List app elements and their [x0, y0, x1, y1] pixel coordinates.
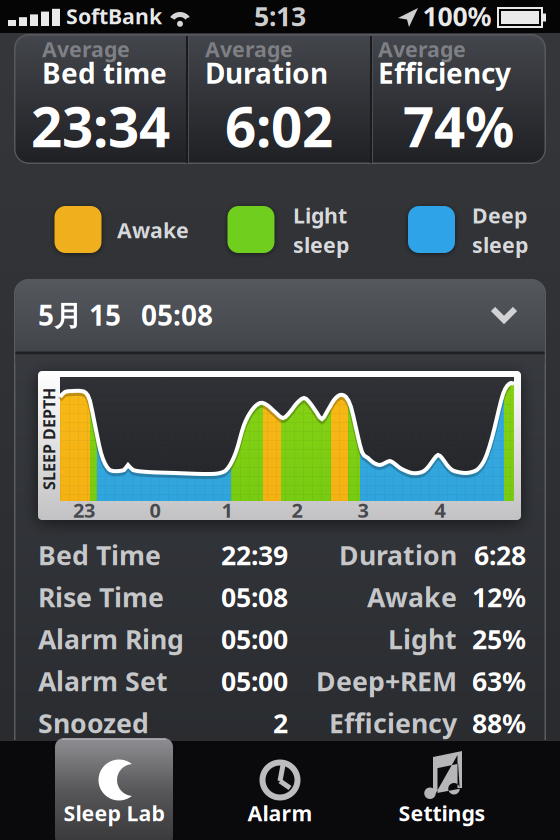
staticText: SoftBank [66, 2, 162, 30]
staticText: Efficiency [329, 705, 457, 741]
staticText: 5:13 [254, 0, 306, 34]
button[interactable]: Alarm [0, 0, 560, 840]
staticText: Sleep Lab [63, 799, 164, 827]
staticText: Light [388, 621, 457, 657]
staticText: Duration [339, 537, 457, 573]
staticText: Alarm Ring [38, 621, 184, 657]
button[interactable]: Sleep Lab [0, 0, 560, 840]
staticText: 4 [434, 497, 445, 523]
staticText: sleep [472, 230, 528, 259]
staticText: 12% [472, 579, 526, 615]
staticText: Alarm [247, 799, 312, 827]
staticText: Snoozed [38, 705, 149, 741]
staticText: 0 [149, 497, 160, 523]
staticText: Awake [117, 216, 189, 244]
button[interactable]: 5月 15 [0, 0, 560, 840]
staticText: 2 [291, 497, 302, 523]
staticText: Awake [367, 579, 457, 615]
staticText: 6:02 [225, 90, 333, 162]
staticText: 88% [472, 705, 526, 741]
staticText: Settings [398, 799, 485, 827]
staticText: sleep [293, 230, 349, 259]
staticText: Alarm Set [38, 663, 168, 699]
staticText: Light [293, 201, 347, 229]
staticText: 1 [221, 497, 232, 523]
staticText: Average [42, 35, 130, 63]
staticText: Bed Time [38, 537, 161, 573]
staticText: 05:08 [221, 579, 288, 615]
staticText: 23:34 [31, 90, 170, 162]
staticText: 2 [273, 705, 288, 741]
staticText: 74% [403, 90, 514, 162]
staticText: 05:00 [221, 663, 288, 699]
staticText: Rise Time [38, 579, 164, 615]
staticText: Average [378, 35, 466, 63]
staticText: Deep [472, 201, 527, 229]
staticText: SLEEP DEPTH [0, 428, 100, 450]
staticText: Efficiency [378, 54, 511, 92]
staticText: 05:08 [141, 296, 213, 334]
staticText: Duration [205, 54, 328, 92]
staticText: 23 [73, 497, 95, 523]
staticText: 22:39 [221, 537, 288, 573]
staticText: 25% [472, 621, 526, 657]
staticText: Average [205, 35, 293, 63]
staticText: 5月 15 [38, 296, 121, 334]
button[interactable]: Settings [0, 0, 560, 840]
staticText: Bed time [42, 54, 167, 92]
staticText: 05:00 [221, 621, 288, 657]
staticText: 100% [422, 0, 491, 34]
staticText: 3 [357, 497, 368, 523]
staticText: 63% [472, 663, 526, 699]
staticText: Deep+REM [316, 663, 457, 699]
staticText: 6:28 [474, 537, 526, 573]
